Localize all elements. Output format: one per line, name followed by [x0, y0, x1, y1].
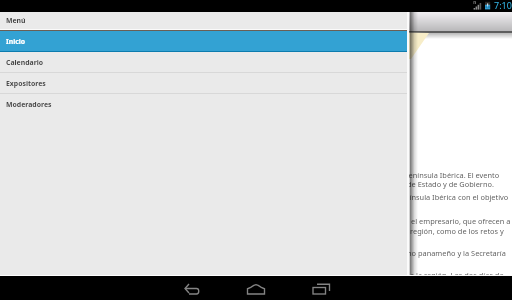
button[interactable]: Back: [179, 277, 207, 300]
button[interactable]: Recent apps: [308, 276, 336, 300]
staticText: Menú: [6, 16, 26, 25]
staticText: Moderadores: [6, 100, 52, 109]
staticText: 7:10: [494, 0, 512, 11]
staticText: Expositores: [6, 79, 46, 88]
staticText: a región, como de los retos y: [404, 226, 504, 236]
button[interactable]: Calendario: [0, 52, 409, 72]
staticText: Inicio: [6, 37, 26, 46]
staticText: no panameño y la Secretaría: [407, 248, 506, 258]
button[interactable]: Moderadores: [0, 94, 409, 114]
staticText: de Estado y de Gobierno.: [407, 179, 494, 189]
staticText: a la región. Los dos días de: [410, 270, 504, 280]
staticText: nínsula Ibérica con el objetivo: [405, 192, 509, 202]
button[interactable]: Inicio: [0, 31, 409, 51]
button[interactable]: Menú: [0, 12, 409, 29]
staticText: a el empresario, que ofrecen a: [405, 216, 511, 226]
staticText: Calendario: [6, 58, 44, 67]
button[interactable]: Expositores: [0, 73, 409, 93]
button[interactable]: Home: [243, 277, 271, 300]
staticText: península Ibérica. El evento: [404, 170, 500, 180]
